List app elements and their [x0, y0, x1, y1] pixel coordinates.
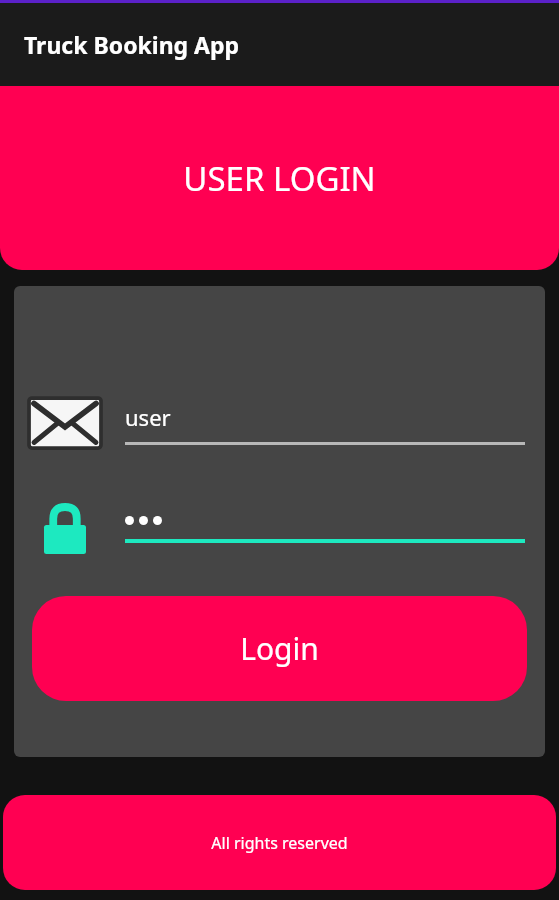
button[interactable]: USER LOGIN — [0, 86, 559, 270]
staticText: user — [125, 402, 171, 432]
button[interactable]: Login — [32, 596, 527, 701]
other: Email — [29, 398, 101, 448]
staticText: Truck Booking App — [24, 29, 240, 60]
staticText: USER LOGIN — [183, 156, 376, 201]
staticText: Login — [240, 628, 319, 669]
button[interactable]: user — [125, 402, 525, 445]
button[interactable] — [125, 516, 525, 543]
button[interactable]: All rights reserved — [3, 795, 556, 890]
other: Password — [29, 503, 101, 555]
staticText: All rights reserved — [211, 832, 348, 854]
